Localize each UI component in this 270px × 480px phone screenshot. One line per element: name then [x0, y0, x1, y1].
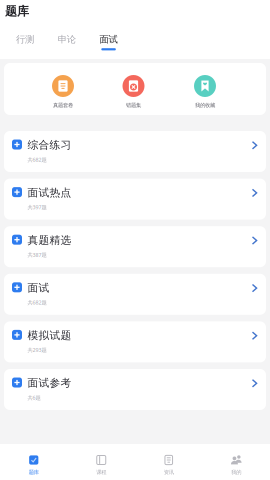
staticText: 行测 [16, 34, 34, 45]
staticText: 综合练习 [27, 138, 71, 152]
button[interactable]: 真题套卷 [37, 63, 89, 115]
button[interactable]: 真题精选 [4, 226, 266, 267]
button[interactable]: 面试参考 [4, 369, 266, 410]
button[interactable]: 面试 [88, 34, 129, 50]
staticText: 面试 [100, 34, 118, 45]
button[interactable]: 行测 [4, 34, 46, 50]
button[interactable]: 模拟试题 [4, 321, 266, 362]
button[interactable]: 资讯 [135, 444, 202, 480]
staticText: 错题集 [126, 102, 141, 109]
staticText: 面试 [27, 281, 49, 294]
staticText: 题库 [5, 4, 29, 19]
staticText: 题库 [29, 469, 39, 476]
staticText: 申论 [58, 34, 76, 45]
staticText: 资讯 [164, 469, 174, 476]
staticText: 真题精选 [27, 234, 71, 247]
button[interactable]: 面试 [4, 274, 266, 315]
staticText: 共6题 [27, 394, 40, 401]
staticText: 共397题 [27, 204, 46, 211]
staticText: 共682题 [27, 299, 46, 306]
button[interactable]: 题库 [0, 444, 67, 480]
button[interactable]: 我的收藏 [179, 63, 231, 115]
staticText: 模拟试题 [27, 329, 71, 342]
button[interactable]: 我的 [202, 444, 270, 480]
button[interactable]: 申论 [46, 34, 88, 50]
staticText: 真题套卷 [53, 102, 73, 109]
button[interactable]: 错题集 [107, 63, 159, 115]
staticText: 共682题 [27, 156, 46, 163]
button[interactable]: 综合练习 [4, 131, 266, 172]
staticText: 我的 [231, 469, 241, 476]
button[interactable]: 课程 [67, 444, 135, 480]
staticText: 我的收藏 [195, 102, 215, 109]
button[interactable]: 面试热点 [4, 179, 266, 220]
staticText: 面试参考 [27, 376, 71, 390]
staticText: 共293题 [27, 346, 46, 354]
staticText: 共387题 [27, 251, 46, 258]
staticText: 课程 [96, 469, 106, 476]
staticText: 面试热点 [27, 186, 71, 199]
